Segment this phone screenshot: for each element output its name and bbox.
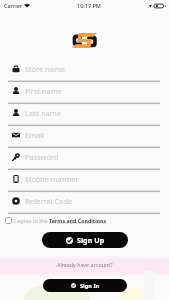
button[interactable]: Sign In bbox=[43, 279, 127, 292]
staticText: Password bbox=[25, 152, 59, 162]
button[interactable]: Referral Code bbox=[0, 194, 169, 208]
staticText: Sign In bbox=[80, 282, 100, 290]
button[interactable]: First name bbox=[0, 84, 169, 98]
staticText: 10:17 PM bbox=[77, 2, 101, 9]
button[interactable]: Password bbox=[0, 150, 169, 164]
button[interactable]: Sign Up bbox=[42, 232, 128, 248]
staticText: Last name bbox=[25, 108, 61, 118]
button[interactable]: Last name bbox=[0, 106, 169, 120]
staticText: I agree to the bbox=[14, 217, 49, 224]
staticText: Sign Up bbox=[77, 235, 105, 245]
staticText: Already have account? bbox=[57, 261, 113, 268]
button[interactable]: I agree to the bbox=[5, 215, 107, 226]
staticText: Mobile number bbox=[25, 174, 79, 184]
staticText: Carrier bbox=[4, 2, 23, 9]
button[interactable]: Mobile number bbox=[0, 172, 169, 186]
button[interactable]: Email bbox=[0, 128, 169, 142]
staticText: Email bbox=[25, 130, 44, 140]
button[interactable]: Store name bbox=[0, 62, 169, 76]
staticText: Store name bbox=[25, 64, 65, 74]
staticText: Terms and Conditions bbox=[49, 217, 107, 224]
staticText: Referral Code bbox=[25, 196, 73, 206]
staticText: First name bbox=[25, 86, 62, 96]
